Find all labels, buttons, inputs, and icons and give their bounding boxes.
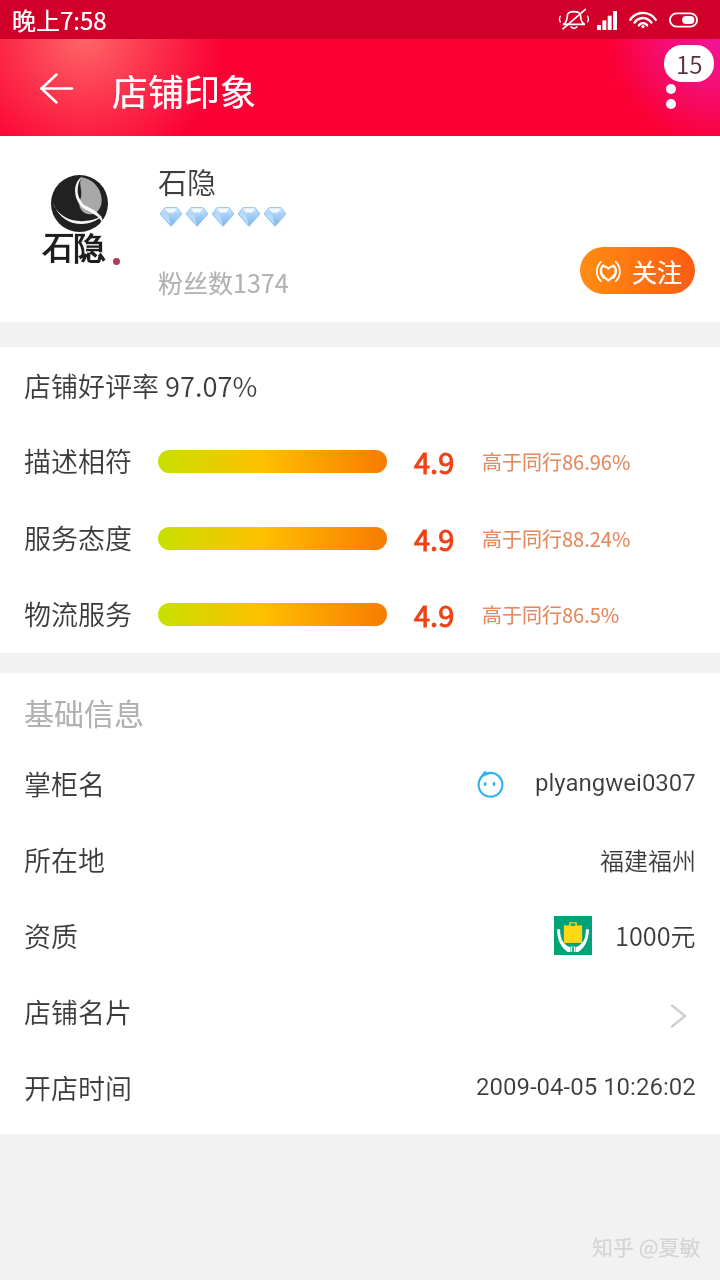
staticText: 开店时间 bbox=[24, 1068, 132, 1107]
staticText: 4.9 bbox=[414, 517, 455, 559]
staticText: plyangwei0307 bbox=[535, 769, 696, 797]
staticText: 所在地 bbox=[24, 840, 105, 879]
staticText: 晚上7:58 bbox=[12, 2, 107, 37]
button[interactable]: 所在地 bbox=[0, 821, 720, 897]
staticText: 基础信息 bbox=[24, 690, 144, 733]
button[interactable]: Back bbox=[28, 60, 84, 116]
button[interactable]: Notifications 15 bbox=[664, 45, 714, 82]
staticText: 4.9 bbox=[414, 440, 455, 482]
staticText: 石隐 bbox=[42, 229, 104, 268]
staticText: 4.9 bbox=[414, 593, 455, 635]
staticText: 高于同行86.5% bbox=[482, 600, 620, 629]
staticText: 高于同行88.24% bbox=[482, 524, 631, 553]
button[interactable]: 关注 bbox=[580, 247, 695, 294]
staticText: 1000元 bbox=[615, 917, 696, 953]
staticText: 高于同行86.96% bbox=[482, 447, 631, 476]
staticText: 店铺好评率 97.07% bbox=[24, 366, 258, 405]
staticText: 物流服务 bbox=[24, 594, 132, 633]
staticText: 服务态度 bbox=[24, 518, 132, 557]
staticText: 粉丝数1374 bbox=[158, 264, 289, 300]
staticText: 15 bbox=[676, 46, 703, 81]
staticText: 描述相符 bbox=[24, 441, 132, 480]
staticText: 福建福州 bbox=[600, 842, 696, 877]
staticText: 店铺印象 bbox=[112, 64, 257, 116]
staticText: 关注 bbox=[632, 253, 683, 289]
button[interactable]: 开店时间 bbox=[0, 1049, 720, 1125]
staticText: 店铺名片 bbox=[24, 992, 132, 1031]
staticText: 资质 bbox=[24, 916, 78, 955]
staticText: 石隐 bbox=[158, 160, 217, 202]
staticText: 2009-04-05 10:26:02 bbox=[476, 1073, 696, 1101]
button[interactable]: More options bbox=[643, 44, 699, 100]
staticText: 掌柜名 bbox=[24, 764, 105, 803]
button[interactable]: 掌柜名 bbox=[0, 745, 720, 821]
button[interactable]: 资质 bbox=[0, 897, 720, 973]
staticText: 知乎 @夏敏 bbox=[592, 1231, 701, 1261]
button[interactable]: 店铺名片 bbox=[0, 973, 720, 1049]
